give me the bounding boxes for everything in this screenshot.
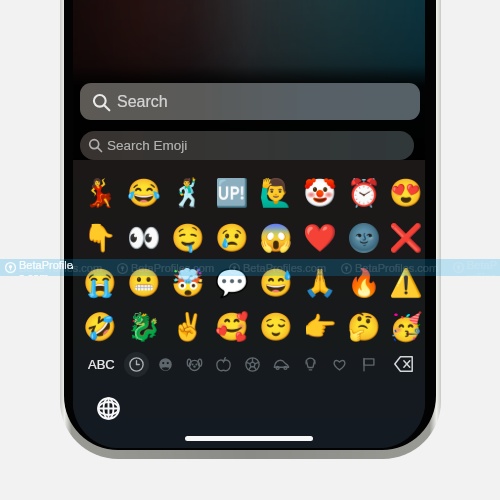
staticText: BetaProfiles.com [355,262,439,274]
button[interactable]: ❤️ [298,215,342,260]
staticText: Search Emoji [107,138,188,153]
staticText: 🤣 [83,311,117,343]
staticText: ⚠️ [389,267,423,299]
staticText: 😢 [215,222,249,254]
button[interactable]: ❌ [386,215,425,260]
button[interactable]: 👇 [78,215,122,260]
button[interactable]: Flags [354,351,383,377]
button[interactable]: 😱 [254,215,298,260]
button[interactable]: 🤯 [166,260,210,305]
button[interactable]: 😍 [386,170,425,215]
staticText: BetaProfiles.com [131,262,215,274]
staticText: 💬 [215,267,249,299]
staticText: ✌️ [171,311,205,343]
button[interactable]: 🔥 [342,260,386,305]
button[interactable]: 😢 [210,215,254,260]
button[interactable]: ✌️ [166,305,210,348]
button[interactable]: 🌚 [342,215,386,260]
staticText: BetaProfiles.com [19,262,103,274]
button[interactable]: 🙋‍♂️ [254,170,298,215]
staticText: 🕺 [171,177,205,209]
button[interactable]: 💬 [210,260,254,305]
button[interactable]: 😭 [78,260,122,305]
staticText: 😬 [127,267,161,299]
staticText: ABC [88,357,115,372]
button[interactable]: Activity [238,351,267,377]
button[interactable]: 🤣 [78,305,122,348]
staticText: 🤔 [347,311,381,343]
button[interactable]: 🥳 [386,305,425,348]
button[interactable]: Recent [122,351,151,377]
staticText: 🙏 [303,267,337,299]
button[interactable]: 🤤 [166,215,210,260]
button[interactable]: Symbols [325,351,354,377]
staticText: 👉 [303,311,337,343]
button[interactable]: 🤔 [342,305,386,348]
button[interactable]: Delete [385,351,421,377]
button[interactable]: 👀 [122,215,166,260]
staticText: BetaProfiles.com [19,259,73,276]
staticText: 😱 [259,222,293,254]
staticText: 👀 [127,222,161,254]
staticText: ❤️ [303,222,337,254]
staticText: 🌚 [347,222,381,254]
button[interactable]: ⚠️ [386,260,425,305]
staticText: 😌 [259,311,293,343]
staticText: 🙋‍♂️ [259,177,293,209]
staticText: ❌ [389,222,423,254]
staticText: 🥳 [389,311,423,343]
staticText: 😍 [389,177,423,209]
button[interactable]: Search Emoji [80,131,414,160]
staticText: 😂 [127,177,161,209]
button[interactable]: 😌 [254,305,298,348]
staticText: BetaProfiles.com [243,262,327,274]
button[interactable]: Change keyboard [95,395,121,421]
button[interactable]: Travel [267,351,296,377]
button[interactable]: 💃 [78,170,122,215]
button[interactable]: Food [209,351,238,377]
button[interactable]: 🙏 [298,260,342,305]
staticText: 🐉 [127,311,161,343]
staticText: 🆙 [215,177,249,209]
staticText: 🔥 [347,267,381,299]
button[interactable]: 👉 [298,305,342,348]
button[interactable]: Search [80,83,420,120]
button[interactable]: 😅 [254,260,298,305]
button[interactable]: 🐉 [122,305,166,348]
staticText: 💃 [83,177,117,209]
staticText: 🤡 [303,177,337,209]
button[interactable]: 😬 [122,260,166,305]
button[interactable]: 🕺 [166,170,210,215]
staticText: 🤤 [171,222,205,254]
button[interactable]: Objects [296,351,325,377]
button[interactable]: Animals [180,351,209,377]
staticText: 🥰 [215,311,249,343]
button[interactable]: Smileys [151,351,180,377]
staticText: 👇 [83,222,117,254]
button[interactable]: 🤡 [298,170,342,215]
staticText: ⏰ [347,177,381,209]
button[interactable]: ABC [80,351,122,377]
button[interactable]: 🥰 [210,305,254,348]
button[interactable]: ⏰ [342,170,386,215]
button[interactable]: 😂 [122,170,166,215]
staticText: BetaProfiles.com [467,259,500,276]
staticText: 😅 [259,267,293,299]
staticText: 🤯 [171,267,205,299]
staticText: 😭 [83,267,117,299]
button[interactable]: 🆙 [210,170,254,215]
staticText: Search [117,93,168,111]
